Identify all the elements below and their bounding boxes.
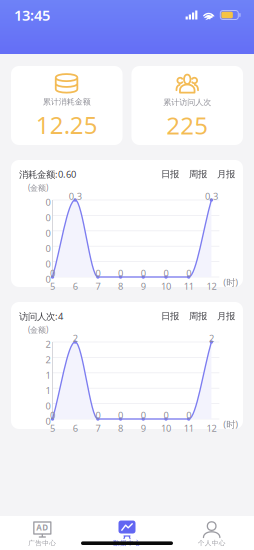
staticText: 数据中心 bbox=[113, 539, 141, 547]
button[interactable]: 月报 bbox=[207, 168, 235, 180]
staticText: 6 bbox=[73, 280, 78, 292]
staticText: 13:45 bbox=[14, 5, 50, 25]
staticText: 0 bbox=[50, 267, 55, 279]
staticText: 8 bbox=[118, 422, 123, 434]
staticText: 1 bbox=[45, 369, 50, 381]
staticText: 2 bbox=[73, 332, 78, 344]
staticText: 1 bbox=[45, 384, 50, 397]
staticText: 0 bbox=[186, 267, 191, 279]
staticText: 0.3 bbox=[205, 190, 218, 202]
staticText: 0 bbox=[45, 242, 50, 255]
button[interactable]: 日报 bbox=[161, 168, 179, 180]
staticText: (金额) bbox=[28, 324, 48, 335]
button[interactable]: 累计访问人次 bbox=[131, 66, 243, 145]
staticText: (时) bbox=[223, 276, 238, 288]
staticText: 0 bbox=[141, 267, 146, 279]
staticText: 访问人次:4 bbox=[19, 310, 63, 322]
button[interactable]: 数据中心 bbox=[85, 516, 169, 550]
staticText: 12 bbox=[206, 422, 216, 434]
staticText: 8 bbox=[118, 280, 123, 292]
staticText: 0 bbox=[45, 400, 50, 412]
staticText: 0 bbox=[45, 211, 50, 224]
staticText: 0 bbox=[45, 258, 50, 270]
staticText: 0 bbox=[186, 409, 191, 421]
button[interactable]: 月报 bbox=[207, 310, 235, 322]
staticText: 0 bbox=[141, 409, 146, 421]
staticText: 0 bbox=[45, 415, 50, 427]
staticText: 日报 bbox=[161, 310, 179, 322]
staticText: 9 bbox=[141, 422, 146, 434]
staticText: 11 bbox=[184, 280, 194, 292]
staticText: 月报 bbox=[217, 310, 235, 322]
staticText: 11 bbox=[184, 422, 194, 434]
staticText: 5 bbox=[50, 280, 55, 292]
staticText: 12 bbox=[206, 280, 216, 292]
staticText: 日报 bbox=[161, 168, 179, 180]
staticText: 2 bbox=[45, 353, 50, 366]
staticText: 9 bbox=[141, 280, 146, 292]
staticText: 0 bbox=[95, 267, 100, 279]
button[interactable]: AD bbox=[0, 516, 85, 550]
staticText: 10 bbox=[161, 422, 171, 434]
staticText: 0 bbox=[45, 196, 50, 208]
staticText: 0 bbox=[50, 409, 55, 421]
staticText: 周报 bbox=[189, 310, 207, 322]
staticText: 累计消耗金额 bbox=[43, 97, 91, 107]
staticText: 0 bbox=[95, 409, 100, 421]
staticText: 6 bbox=[73, 422, 78, 434]
staticText: 广告中心 bbox=[28, 539, 56, 547]
staticText: 0 bbox=[163, 267, 168, 279]
staticText: 2 bbox=[45, 338, 50, 350]
staticText: 225 bbox=[166, 109, 208, 141]
staticText: (时) bbox=[223, 418, 238, 430]
staticText: 月报 bbox=[217, 168, 235, 180]
staticText: 10 bbox=[161, 280, 171, 292]
staticText: 0 bbox=[45, 273, 50, 285]
staticText: 周报 bbox=[189, 168, 207, 180]
staticText: 0.3 bbox=[69, 190, 82, 202]
button[interactable]: 周报 bbox=[179, 168, 207, 180]
staticText: 0 bbox=[163, 409, 168, 421]
staticText: 累计访问人次 bbox=[163, 97, 211, 107]
staticText: (金额) bbox=[28, 182, 48, 193]
staticText: AD bbox=[36, 522, 48, 533]
button[interactable]: 周报 bbox=[179, 310, 207, 322]
staticText: 0 bbox=[118, 267, 123, 279]
staticText: 12.25 bbox=[36, 109, 98, 141]
button[interactable]: 累计消耗金额 bbox=[11, 66, 122, 145]
staticText: 7 bbox=[95, 280, 100, 292]
button[interactable]: 日报 bbox=[161, 310, 179, 322]
staticText: 5 bbox=[50, 422, 55, 434]
staticText: 2 bbox=[209, 332, 214, 344]
staticText: 消耗金额:0.60 bbox=[19, 168, 76, 180]
button[interactable]: 个人中心 bbox=[169, 516, 254, 550]
staticText: 7 bbox=[95, 422, 100, 434]
staticText: 个人中心 bbox=[198, 539, 226, 547]
staticText: 0 bbox=[118, 409, 123, 421]
staticText: 0 bbox=[45, 227, 50, 239]
